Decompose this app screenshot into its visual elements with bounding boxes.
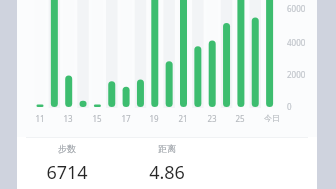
staticText: 步数 — [58, 143, 76, 154]
staticText: 11 — [35, 113, 45, 124]
button[interactable]: 步数 — [17, 143, 117, 185]
staticText: 0 — [287, 101, 292, 112]
button[interactable]: 每日步数柱状图 — [17, 0, 317, 137]
staticText: 23 — [207, 113, 217, 124]
staticText: 17 — [121, 113, 131, 124]
staticText: 2000 — [287, 69, 306, 80]
staticText: 15 — [92, 113, 102, 124]
staticText: 今日 — [264, 113, 280, 123]
other: 每日步数柱状图 — [17, 0, 317, 137]
staticText: 4000 — [287, 37, 306, 48]
staticText: 6000 — [287, 3, 306, 14]
staticText: 距离 — [158, 143, 176, 154]
staticText: 6714 — [46, 160, 88, 185]
button[interactable]: 距离 — [117, 143, 217, 185]
staticText: 13 — [63, 113, 73, 124]
staticText: 19 — [149, 113, 159, 124]
staticText: 21 — [178, 113, 188, 124]
staticText: 4.86 — [149, 160, 185, 185]
staticText: 25 — [235, 113, 245, 124]
